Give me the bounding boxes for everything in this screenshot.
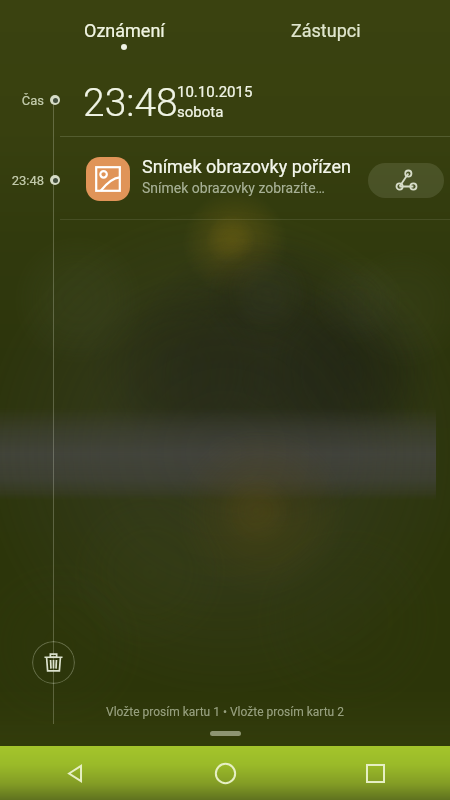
staticText: Snímek obrazovky zobrazíte… [142, 180, 325, 196]
button[interactable]: Clear all notifications [32, 641, 75, 684]
staticText: sobota [177, 103, 224, 121]
button[interactable]: Oznámení [23, 0, 225, 54]
staticText: Zástupci [291, 20, 361, 41]
button[interactable]: Back [0, 746, 150, 800]
staticText: 23:48 [0, 173, 44, 188]
button[interactable]: Recent apps [300, 746, 450, 800]
staticText: Snímek obrazovky pořízen [142, 156, 351, 177]
button[interactable]: Snímek obrazovky pořízen [0, 137, 450, 219]
staticText: Čas [0, 93, 44, 108]
button[interactable]: Zástupci [225, 0, 427, 54]
button[interactable]: Home [150, 746, 300, 800]
staticText: 10.10.2015 [177, 83, 253, 101]
staticText: Vložte prosím kartu 1 • Vložte prosím ka… [106, 705, 344, 719]
button[interactable]: Share [368, 163, 444, 198]
staticText: Oznámení [84, 20, 165, 41]
staticText: 23:48 [83, 80, 178, 126]
